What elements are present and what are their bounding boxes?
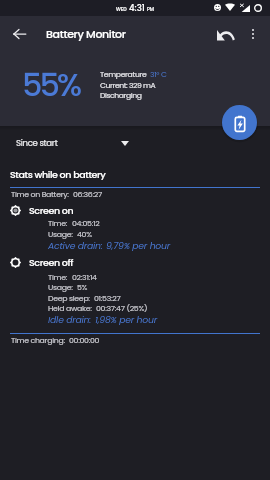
staticText: 5% — [77, 282, 88, 293]
staticText: 40% — [77, 229, 92, 240]
staticText: 4:31 — [129, 2, 145, 14]
staticText: 1,98% per hour — [95, 313, 157, 326]
staticText: 00:00:00 — [69, 335, 100, 346]
staticText: Time: — [48, 272, 68, 283]
staticText: WED — [116, 6, 127, 13]
staticText: 9,79% per hour — [106, 239, 171, 252]
staticText: Since start — [16, 137, 58, 149]
button[interactable]: Reset statistics — [214, 24, 236, 46]
staticText: PM — [147, 6, 155, 13]
button[interactable]: Back — [5, 20, 33, 48]
button[interactable]: Screen on — [10, 204, 130, 217]
button[interactable]: Screen off — [10, 256, 130, 269]
button[interactable]: Charging history — [222, 105, 257, 140]
staticText: 31° — [150, 69, 160, 80]
staticText: Active drain: — [48, 239, 103, 252]
staticText: Usage: — [48, 229, 73, 240]
staticText: 55% — [22, 62, 80, 107]
staticText: Screen on — [29, 204, 74, 217]
staticText: Time on Battery: — [11, 189, 69, 200]
staticText: 01:53:27 — [94, 293, 121, 304]
staticText: Battery Monitor — [46, 26, 126, 41]
staticText: Screen off — [29, 256, 74, 269]
staticText: 00:37:47 (25%) — [96, 303, 148, 314]
staticText: Deep sleep: — [48, 293, 90, 304]
staticText: Idle drain: — [48, 313, 92, 326]
staticText: Time charging: — [11, 335, 65, 346]
staticText: Temperature — [100, 69, 147, 80]
staticText: C — [161, 69, 167, 80]
button[interactable]: Since start — [8, 131, 132, 155]
staticText: Discharging — [100, 90, 142, 101]
staticText: 06:36:27 — [73, 189, 102, 200]
staticText: 02:31:14 — [72, 272, 97, 283]
staticText: 04:05:12 — [72, 218, 100, 229]
staticText: Stats while on battery — [10, 168, 106, 181]
staticText: Held awake: — [48, 303, 92, 314]
button[interactable]: More options — [239, 20, 267, 48]
staticText: Current: 329 mA — [100, 80, 156, 91]
staticText: Usage: — [48, 282, 73, 293]
staticText: Time: — [48, 218, 68, 229]
